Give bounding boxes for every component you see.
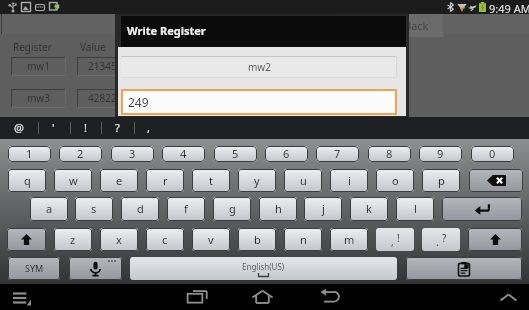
button[interactable]: g	[213, 197, 251, 221]
button[interactable]: h	[259, 197, 297, 221]
staticText: k	[366, 201, 372, 216]
staticText: mw3	[27, 91, 50, 105]
button[interactable]: d	[121, 197, 159, 221]
button[interactable]: Hide keyboard	[500, 294, 517, 301]
button[interactable]: w	[54, 169, 92, 192]
button[interactable]: i	[330, 169, 368, 192]
button[interactable]: .	[422, 228, 460, 251]
button[interactable]: Save	[333, 14, 388, 37]
button[interactable]: mw2	[121, 56, 397, 78]
staticText: 3	[129, 146, 136, 161]
button[interactable]: Back	[389, 14, 443, 37]
button[interactable]: j	[304, 197, 342, 221]
staticText: .	[436, 235, 439, 249]
button[interactable]: 7	[316, 146, 359, 162]
staticText: o	[392, 173, 399, 188]
button[interactable]: n	[284, 228, 322, 251]
staticText: 9	[437, 146, 444, 161]
button[interactable]: 21345	[77, 57, 139, 76]
button[interactable]: ,	[133, 117, 163, 139]
staticText: s	[91, 201, 97, 216]
button[interactable]: 5	[214, 146, 257, 162]
staticText: u	[300, 173, 307, 188]
button[interactable]: s	[75, 197, 113, 221]
button[interactable]: p	[422, 169, 460, 192]
button[interactable]: 42822	[77, 89, 139, 108]
button[interactable]: y	[238, 169, 276, 192]
button[interactable]: c	[146, 228, 184, 251]
staticText: 21345	[88, 59, 117, 73]
staticText: ,	[391, 235, 394, 249]
staticText: Value	[80, 40, 106, 54]
staticText: x	[116, 232, 122, 247]
button[interactable]: b	[238, 228, 276, 251]
staticText: g	[229, 201, 236, 216]
staticText: SYM	[25, 262, 44, 274]
button[interactable]: mw3	[11, 89, 66, 108]
button[interactable]: Space	[130, 257, 397, 280]
button[interactable]: q	[8, 169, 46, 192]
staticText: p	[438, 173, 445, 188]
button[interactable]: e	[100, 169, 138, 192]
staticText: @	[14, 120, 24, 135]
button[interactable]: Back	[320, 287, 341, 304]
staticText: d	[137, 201, 144, 216]
button[interactable]: ,	[376, 228, 414, 251]
button[interactable]: a	[30, 197, 68, 221]
button[interactable]: 4	[162, 146, 205, 162]
staticText: 9:49 AM	[489, 1, 529, 15]
button[interactable]: 3	[111, 146, 154, 162]
button[interactable]: x	[100, 228, 138, 251]
staticText: !	[397, 231, 400, 245]
button[interactable]: mw1	[11, 57, 66, 76]
staticText: f	[184, 201, 188, 216]
button[interactable]: Voice input	[69, 257, 122, 280]
staticText: i	[348, 173, 351, 188]
button[interactable]: k	[350, 197, 388, 221]
staticText: !	[84, 120, 87, 135]
staticText: 8	[386, 146, 393, 161]
button[interactable]: m	[330, 228, 368, 251]
button[interactable]: t	[192, 169, 230, 192]
staticText: v	[208, 232, 214, 247]
staticText: 2	[77, 146, 84, 161]
staticText: q	[24, 173, 31, 188]
button[interactable]: o	[376, 169, 414, 192]
button[interactable]: 249	[121, 89, 397, 115]
button[interactable]: 1	[8, 146, 51, 162]
staticText: z	[70, 232, 76, 247]
button[interactable]: '	[38, 117, 68, 139]
button[interactable]: Enter	[442, 197, 522, 221]
button[interactable]: 2	[59, 146, 102, 162]
button[interactable]: Backspace	[469, 169, 523, 192]
button[interactable]: @	[4, 117, 34, 139]
button[interactable]: Home	[252, 287, 273, 304]
staticText: 42822	[88, 91, 117, 105]
button[interactable]: Recent apps	[187, 287, 208, 304]
button[interactable]: 0	[471, 146, 514, 162]
button[interactable]: r	[146, 169, 184, 192]
button[interactable]: Shift	[7, 228, 46, 251]
button[interactable]: ?	[102, 117, 132, 139]
button[interactable]: Menu	[13, 292, 31, 302]
staticText: 1	[26, 146, 33, 161]
button[interactable]: SYM	[8, 257, 60, 280]
staticText: t	[209, 173, 213, 188]
button[interactable]: u	[284, 169, 322, 192]
staticText: ?	[115, 120, 120, 135]
button[interactable]: Clipboard	[406, 257, 522, 280]
staticText: 4	[180, 146, 187, 161]
button[interactable]: !	[70, 117, 100, 139]
button[interactable]: f	[167, 197, 205, 221]
button[interactable]: 9	[419, 146, 462, 162]
button[interactable]: l	[396, 197, 434, 221]
staticText: mw1	[27, 59, 50, 73]
button[interactable]: 6	[265, 146, 308, 162]
button[interactable]: z	[54, 228, 92, 251]
button[interactable]: v	[192, 228, 230, 251]
staticText: 6	[283, 146, 290, 161]
button[interactable]: 8	[368, 146, 411, 162]
staticText: w	[69, 173, 78, 188]
button[interactable]: Shift	[468, 228, 522, 251]
